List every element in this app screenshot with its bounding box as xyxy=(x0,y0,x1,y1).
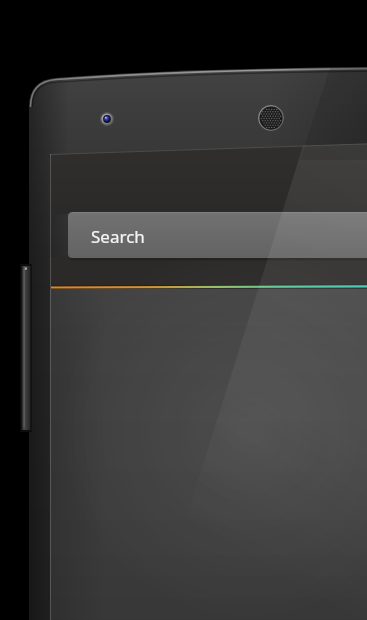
button[interactable]: Search xyxy=(68,212,367,258)
staticText: Search xyxy=(91,225,145,248)
